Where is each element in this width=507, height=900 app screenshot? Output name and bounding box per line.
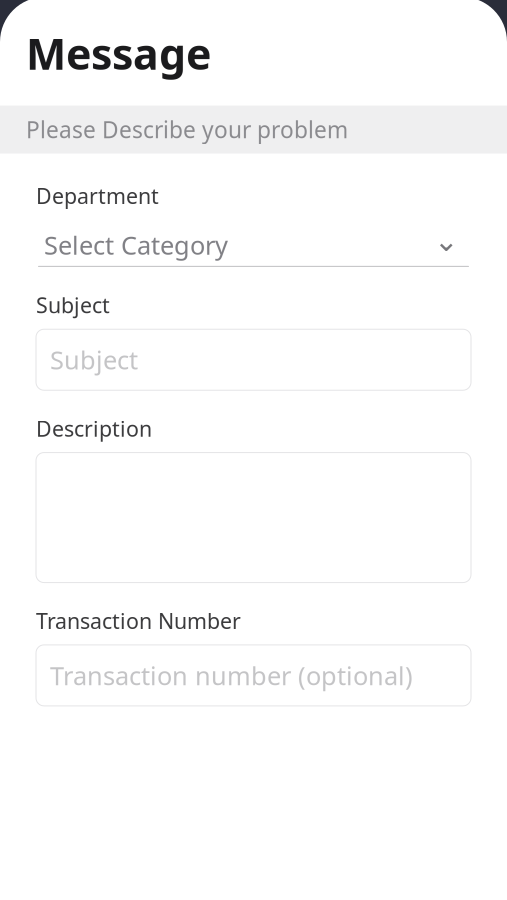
button[interactable]: Transaction number (optional) bbox=[36, 645, 471, 706]
button[interactable]: Subject bbox=[36, 329, 471, 390]
staticText: Message bbox=[26, 25, 211, 82]
button[interactable]: Select Category bbox=[38, 224, 469, 267]
staticText: Subject bbox=[50, 343, 138, 376]
staticText: ⌄ bbox=[434, 224, 459, 258]
staticText: Transaction number (optional) bbox=[50, 659, 413, 692]
staticText: Description bbox=[36, 414, 152, 442]
staticText: Subject bbox=[36, 291, 110, 319]
staticText: Select Category bbox=[44, 228, 228, 262]
staticText: Department bbox=[36, 182, 159, 210]
staticText: Transaction Number bbox=[36, 607, 241, 635]
staticText: Please Describe your problem bbox=[26, 114, 348, 145]
